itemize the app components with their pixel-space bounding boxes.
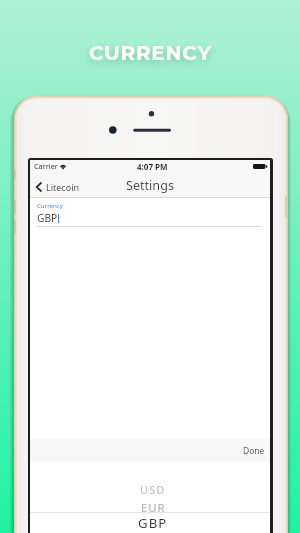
staticText: Settings xyxy=(126,177,174,194)
staticText: Litecoin xyxy=(46,181,80,193)
button[interactable]: Litecoin xyxy=(30,177,88,198)
staticText: Currency xyxy=(37,201,63,209)
staticText: Carrier xyxy=(34,161,58,171)
staticText: Done xyxy=(243,445,265,457)
staticText: 4:07 PM xyxy=(137,161,168,172)
button[interactable]: GBP xyxy=(132,513,174,533)
staticText: GBP xyxy=(37,211,58,225)
staticText: CURRENCY xyxy=(89,41,212,65)
button[interactable]: Currency xyxy=(30,198,270,227)
button[interactable]: USD xyxy=(134,481,172,498)
button[interactable]: EUR xyxy=(135,499,172,516)
button[interactable]: Done xyxy=(238,440,270,462)
